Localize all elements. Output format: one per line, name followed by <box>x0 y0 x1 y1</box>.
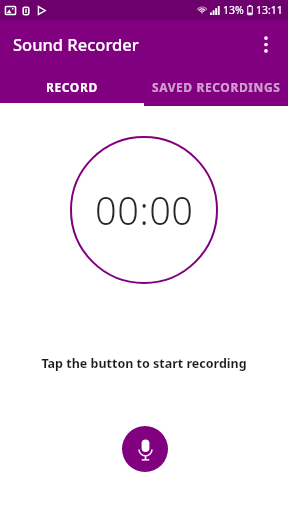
staticText: 13% <box>223 3 244 17</box>
button[interactable]: SAVED RECORDINGS <box>144 67 288 106</box>
staticText: 13:11 <box>256 3 283 17</box>
button[interactable]: More options <box>248 26 284 62</box>
staticText: RECORD <box>46 79 98 95</box>
button[interactable]: RECORD <box>0 67 144 106</box>
staticText: Sound Recorder <box>13 33 139 55</box>
staticText: Tap the button to start recording <box>0 355 288 372</box>
staticText: SAVED RECORDINGS <box>152 79 281 95</box>
staticText: 00:00 <box>95 184 194 236</box>
button[interactable]: Start recording <box>122 426 168 472</box>
